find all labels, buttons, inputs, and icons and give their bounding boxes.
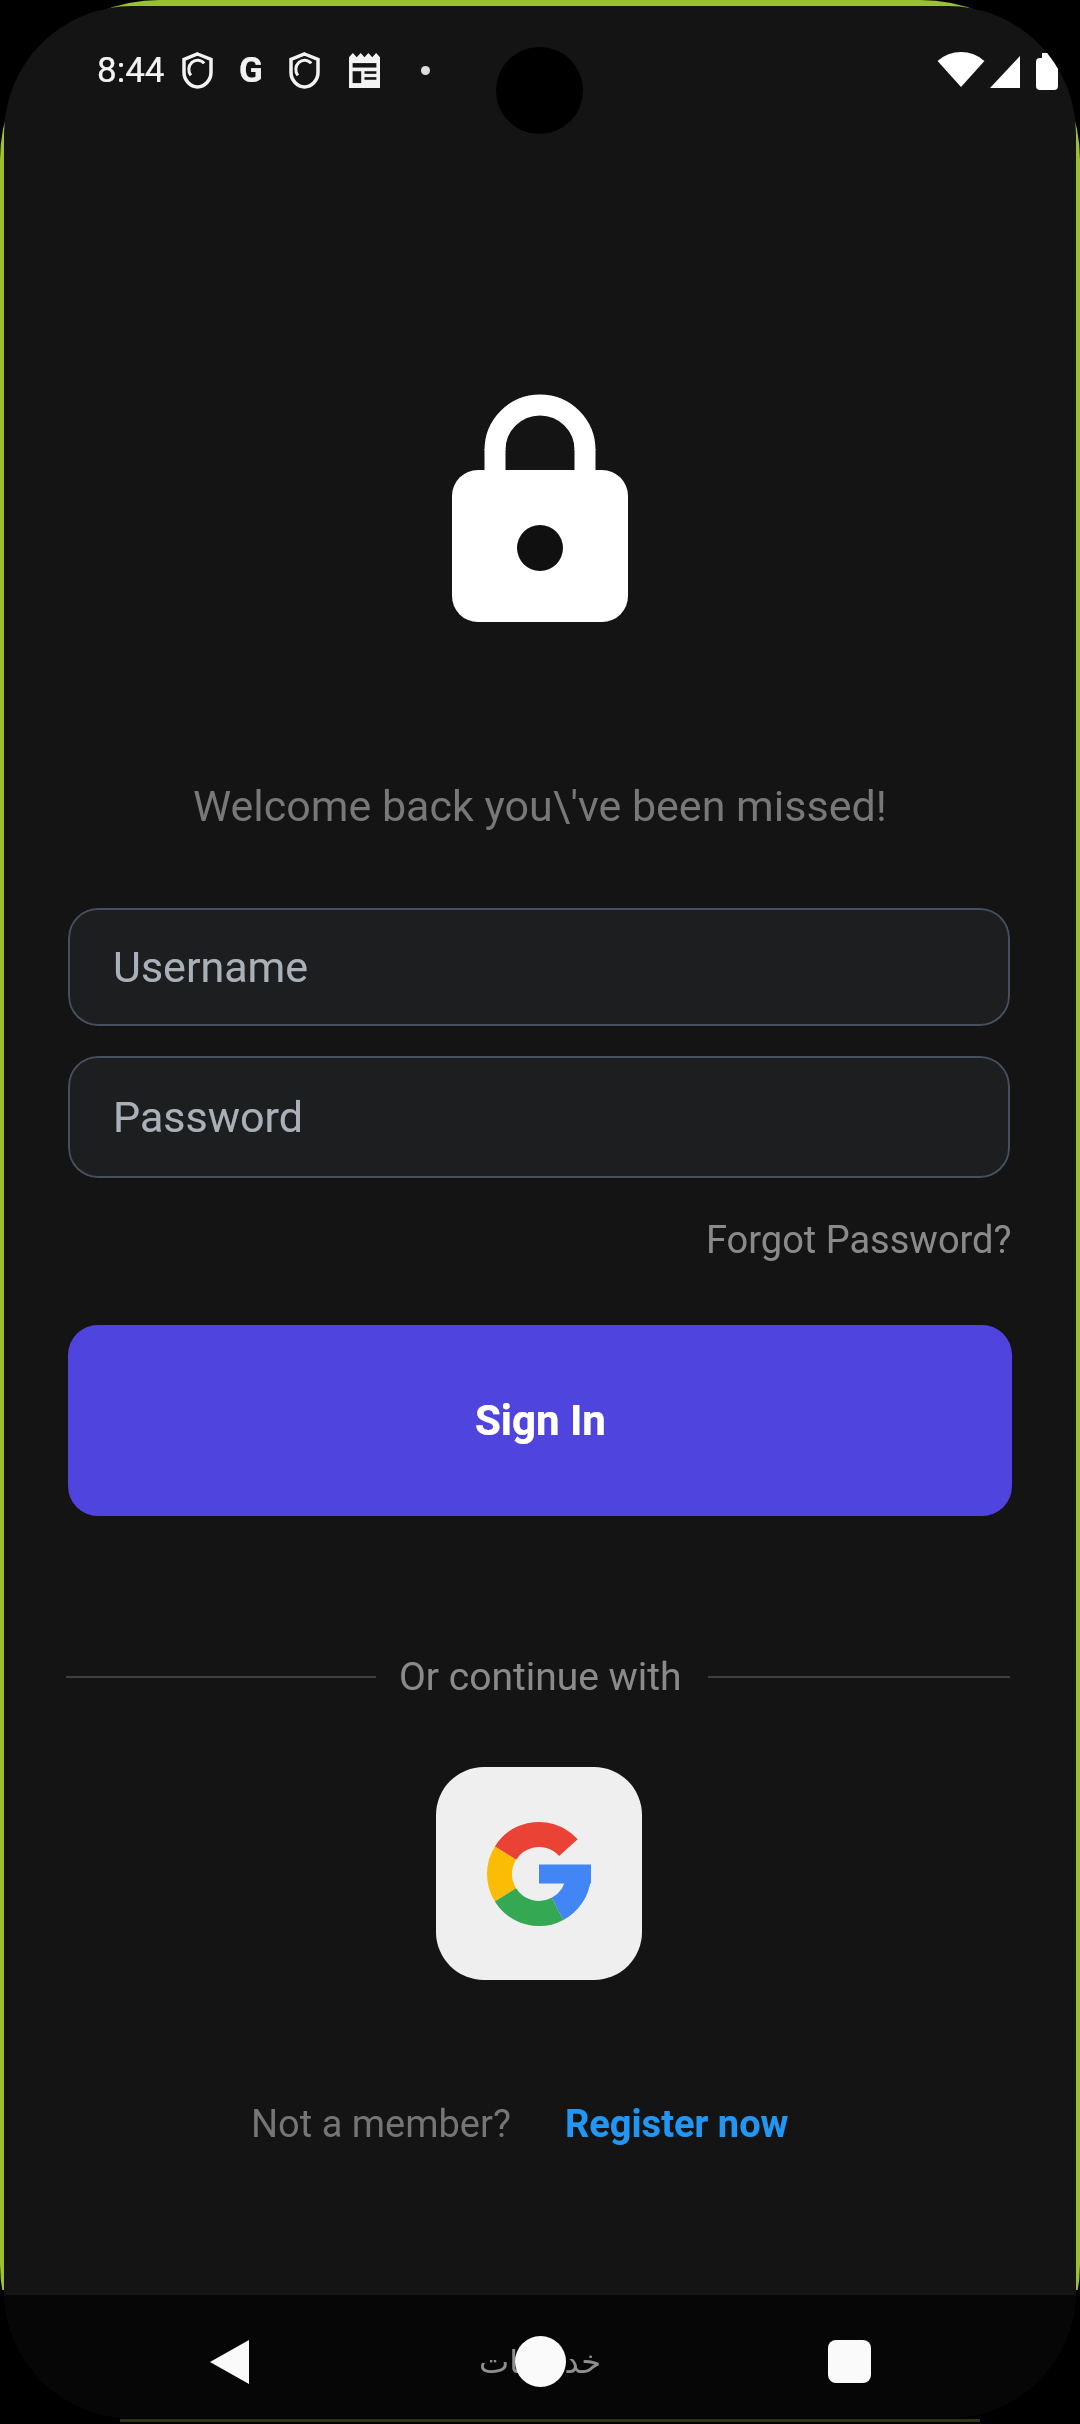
staticText: Sign In xyxy=(475,1396,606,1445)
staticText: Username xyxy=(113,942,309,992)
button[interactable] xyxy=(436,1767,642,1980)
staticText: خدمسات xyxy=(479,2343,602,2380)
staticText: Or continue with xyxy=(399,1654,682,1700)
staticText: Welcome back you\'ve been missed! xyxy=(193,781,887,831)
button[interactable] xyxy=(515,2336,566,2387)
staticText: Not a member? xyxy=(251,2102,511,2147)
button[interactable] xyxy=(208,2337,252,2387)
button[interactable] xyxy=(828,2340,871,2383)
button[interactable]: Sign In xyxy=(68,1325,1012,1516)
staticText: G xyxy=(239,50,263,91)
staticText: Register now xyxy=(565,2102,789,2147)
button[interactable]: Username xyxy=(68,908,1010,1026)
button[interactable]: Password xyxy=(68,1056,1010,1178)
staticText: Password xyxy=(113,1092,303,1142)
staticText: 8:44 xyxy=(97,50,165,91)
button[interactable]: Register now xyxy=(565,2094,789,2154)
button[interactable]: Forgot Password? xyxy=(706,1218,1012,1263)
